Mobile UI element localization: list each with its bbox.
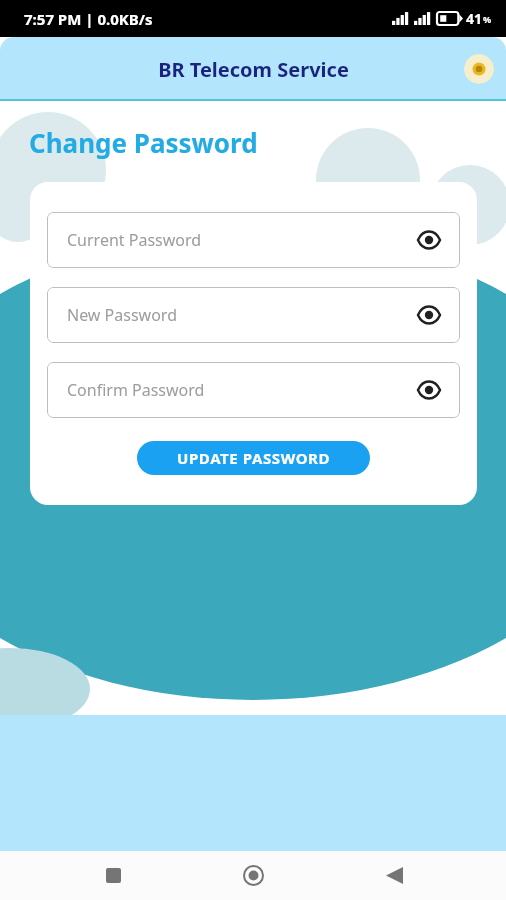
staticText: 41 [466,9,483,28]
staticText: BR Telecom Service [158,56,349,83]
button[interactable]: New Password [47,287,460,343]
button[interactable]: Recent apps [85,851,141,900]
staticText: Confirm Password [67,379,205,401]
staticText: New Password [67,304,177,326]
staticText: Current Password [67,229,202,251]
button[interactable]: Toggle password visibility [412,373,446,407]
button[interactable]: Back [366,851,422,900]
staticText: Change Password [29,125,258,160]
button[interactable]: Toggle password visibility [412,298,446,332]
staticText: 7:57 PM | 0.0KB/s [24,9,153,29]
staticText: UPDATE PASSWORD [177,448,331,468]
button[interactable]: Current Password [47,212,460,268]
staticText: % [483,13,492,25]
button[interactable]: UPDATE PASSWORD [137,441,370,475]
button[interactable]: Home [225,851,281,900]
button[interactable]: Confirm Password [47,362,460,418]
button[interactable]: Toggle password visibility [412,223,446,257]
button[interactable]: Profile [464,54,494,84]
